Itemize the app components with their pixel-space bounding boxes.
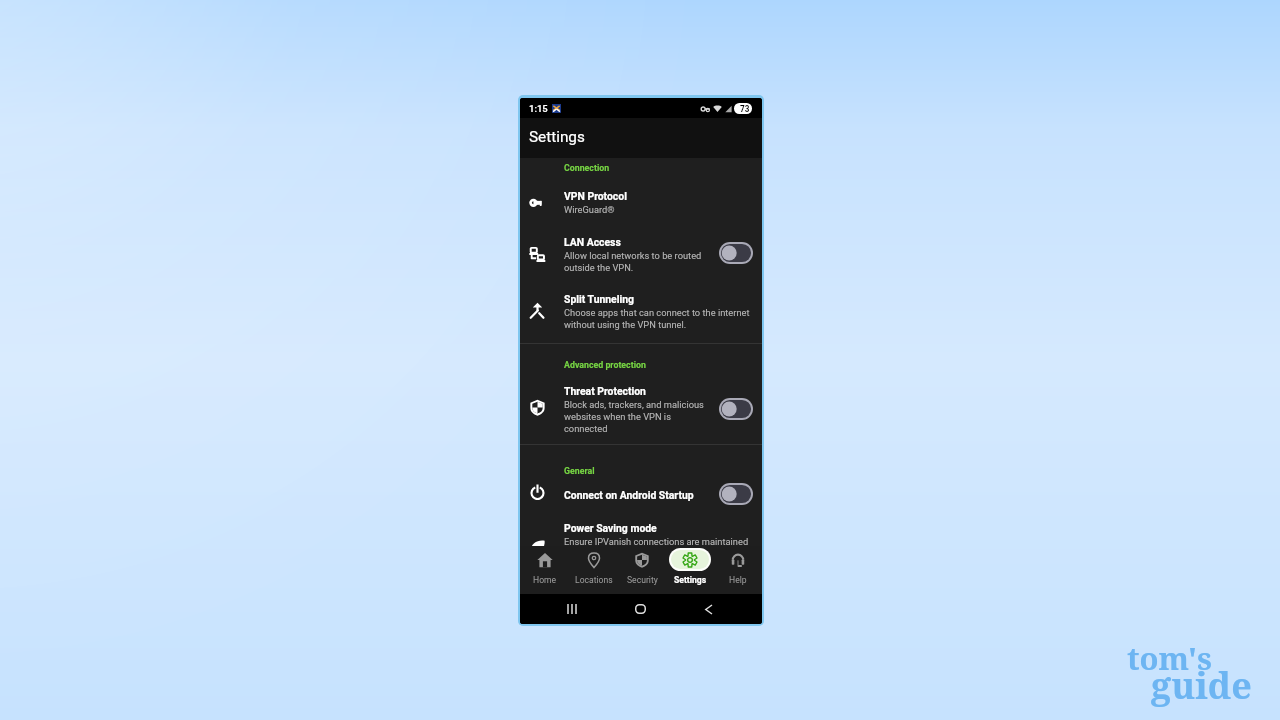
button[interactable]: Split Tunneling [564, 293, 634, 305]
button[interactable]: Connect on Android Startup [564, 489, 694, 501]
button[interactable]: Power Saving mode [564, 522, 657, 534]
button[interactable]: Locations [569, 546, 618, 594]
staticText: Locations [575, 575, 613, 585]
button[interactable]: Toggle [719, 398, 753, 420]
staticText: 73 [740, 104, 750, 114]
button[interactable]: Advanced protection [564, 360, 646, 370]
staticText: Block ads, trackers, and malicious websi… [564, 399, 707, 434]
button[interactable]: Threat Protection [564, 385, 646, 397]
button[interactable]: VPN Protocol [564, 190, 627, 202]
button[interactable]: Help [714, 546, 762, 594]
staticText: WireGuard® [564, 204, 714, 215]
button[interactable]: Recent apps [560, 597, 584, 621]
button[interactable]: Home [628, 597, 652, 621]
button[interactable]: General [564, 466, 595, 476]
button[interactable]: Toggle [719, 242, 753, 264]
button[interactable]: Settings [666, 546, 714, 594]
staticText: 1:15 [529, 103, 548, 114]
staticText: Home [533, 575, 557, 585]
button[interactable]: Back [696, 597, 720, 621]
staticText: Allow local networks to be routed outsid… [564, 250, 704, 273]
staticText: Help [729, 575, 747, 585]
button[interactable]: Connection [564, 163, 610, 173]
staticText: Settings [674, 575, 707, 585]
button[interactable]: LAN Access [564, 236, 621, 248]
staticText: tom's [1127, 637, 1212, 679]
staticText: Security [627, 575, 658, 585]
button[interactable]: Home [520, 546, 569, 594]
button[interactable]: Toggle [719, 483, 753, 505]
staticText: Settings [529, 128, 585, 146]
button[interactable]: Security [618, 546, 666, 594]
staticText: Choose apps that can connect to the inte… [564, 307, 751, 330]
staticText: Ensure IPVanish connections are maintain… [564, 536, 762, 547]
staticText: guide [1151, 661, 1252, 710]
